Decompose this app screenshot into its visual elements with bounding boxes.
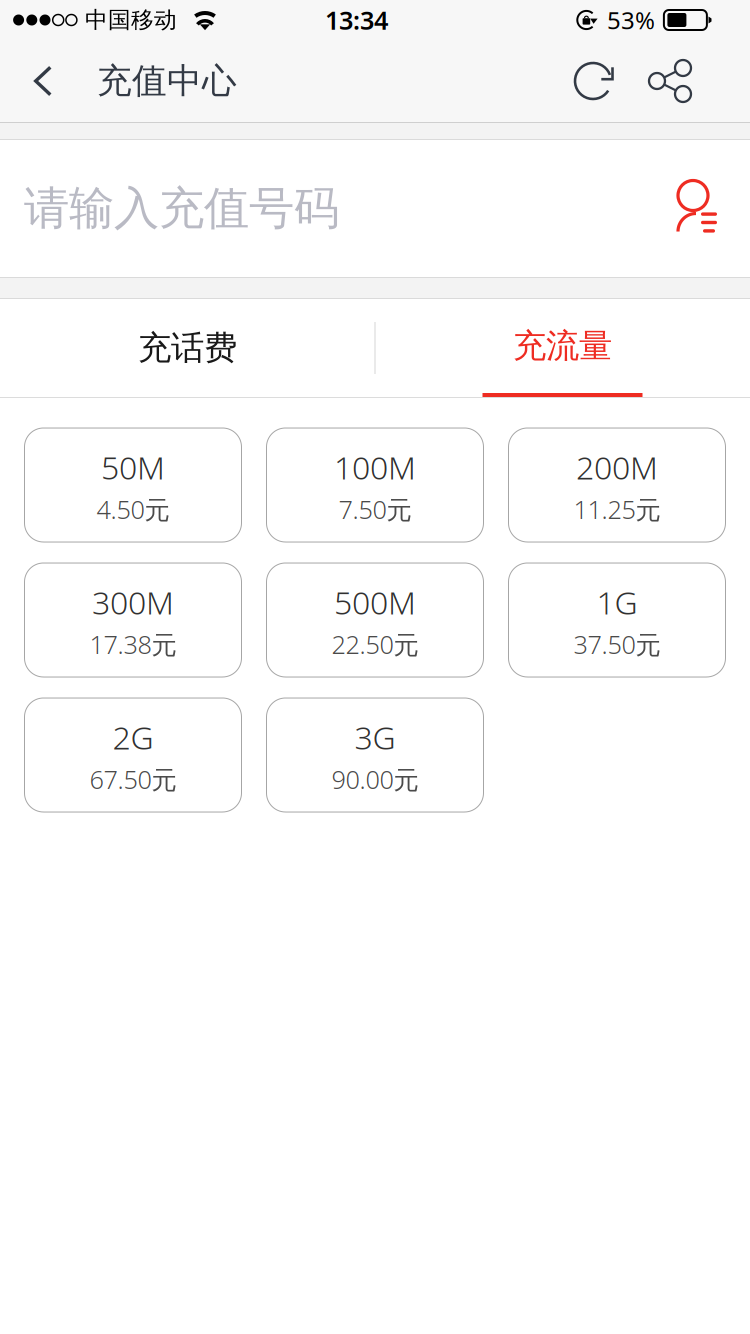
staticText: 4.50元 — [96, 492, 169, 526]
button[interactable]: 通讯录 — [664, 148, 730, 268]
staticText: 37.50元 — [573, 627, 660, 661]
staticText: 90.00元 — [331, 762, 418, 796]
staticText: 充值中心 — [97, 60, 237, 102]
button[interactable]: 充话费 — [0, 299, 375, 397]
button[interactable]: 充流量 — [375, 299, 750, 397]
button[interactable]: 返回 — [12, 40, 74, 122]
button[interactable]: 200M — [508, 428, 725, 542]
button[interactable]: 2G — [24, 698, 241, 812]
staticText: 67.50元 — [89, 762, 176, 796]
button[interactable]: 500M — [266, 563, 483, 677]
staticText: 100M — [334, 446, 416, 488]
button[interactable]: 分享 — [631, 40, 709, 122]
button[interactable]: 3G — [266, 698, 483, 812]
staticText: 53% — [607, 4, 655, 36]
button[interactable]: 刷新 — [555, 40, 631, 122]
button[interactable]: 300M — [24, 563, 241, 677]
button[interactable]: 1G — [508, 563, 725, 677]
staticText: 2G — [112, 716, 153, 758]
staticText: 充流量 — [513, 325, 612, 366]
staticText: 300M — [92, 581, 174, 623]
staticText: 13:34 — [325, 3, 388, 37]
staticText: 3G — [354, 716, 395, 758]
staticText: 11.25元 — [573, 492, 660, 526]
staticText: 17.38元 — [89, 627, 176, 661]
staticText: 请输入充值号码 — [24, 181, 339, 236]
staticText: 50M — [101, 446, 165, 488]
button[interactable]: 100M — [266, 428, 483, 542]
staticText: 500M — [334, 581, 416, 623]
staticText: 充话费 — [138, 327, 237, 368]
staticText: 7.50元 — [338, 492, 411, 526]
staticText: 1G — [596, 581, 637, 623]
staticText: 200M — [576, 446, 658, 488]
staticText: 中国移动 — [85, 6, 177, 34]
staticText: 22.50元 — [331, 627, 418, 661]
button[interactable]: 50M — [24, 428, 241, 542]
